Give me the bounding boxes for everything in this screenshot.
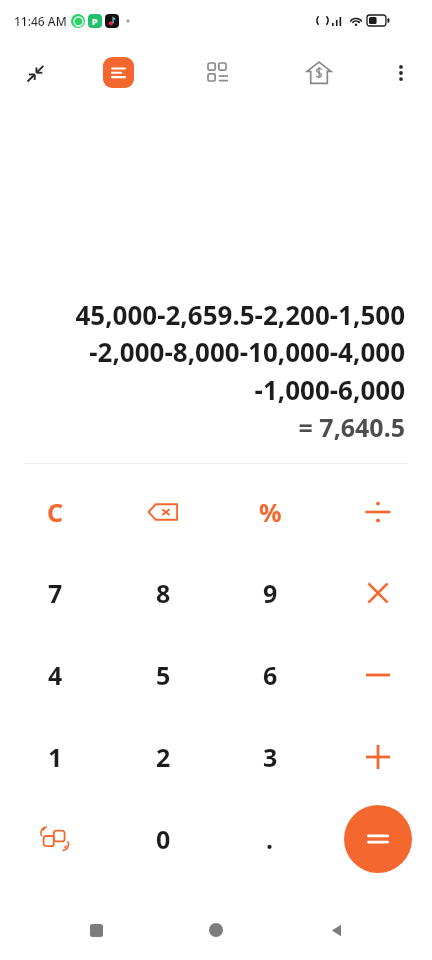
staticText: 6 [263,658,278,692]
button[interactable]: Recents [72,906,120,954]
staticText: -1,000-6,000 [254,372,405,407]
button[interactable]: 7 [15,553,95,633]
button[interactable]: Convert [15,799,95,879]
button[interactable]: 2 [123,717,203,797]
button[interactable]: Multiply [338,553,418,633]
staticText: 5 [156,658,171,692]
button[interactable]: 4 [15,635,95,715]
staticText: 11:46 AM [14,13,67,29]
staticText: = 7,640.5 [298,410,405,444]
staticText: 3 [263,740,278,774]
button[interactable]: Equals [344,805,412,873]
button[interactable]: 6 [230,635,310,715]
button[interactable]: . [230,799,310,879]
button[interactable]: 1 [15,717,95,797]
button[interactable]: More options [380,52,422,94]
staticText: P [92,15,98,27]
button[interactable]: C [15,472,95,552]
staticText: -2,000-8,000-10,000-4,000 [89,334,405,369]
button[interactable]: 9 [230,553,310,633]
staticText: 9 [263,576,278,610]
button[interactable]: Units [199,54,237,92]
button[interactable]: History [103,57,134,88]
button[interactable]: Back [312,906,360,954]
staticText: % [259,495,282,529]
staticText: 8 [156,576,171,610]
button[interactable]: 5 [123,635,203,715]
button[interactable]: Home [192,906,240,954]
button[interactable]: % [230,472,310,552]
button[interactable]: Collapse [14,52,56,94]
staticText: C [47,495,64,529]
button[interactable]: Plus [338,717,418,797]
button[interactable]: 3 [230,717,310,797]
button[interactable]: Loan [298,52,340,94]
staticText: 2 [156,740,171,774]
staticText: . [266,822,274,856]
staticText: 0 [156,822,171,856]
button[interactable]: Backspace [123,472,203,552]
staticText: 7 [48,576,63,610]
staticText: 1 [48,740,63,774]
button[interactable]: Divide [338,472,418,552]
staticText: 4 [48,658,63,692]
button[interactable]: Minus [338,635,418,715]
button[interactable]: 8 [123,553,203,633]
button[interactable]: 0 [123,799,203,879]
staticText: 45,000-2,659.5-2,200-1,500 [75,297,405,332]
